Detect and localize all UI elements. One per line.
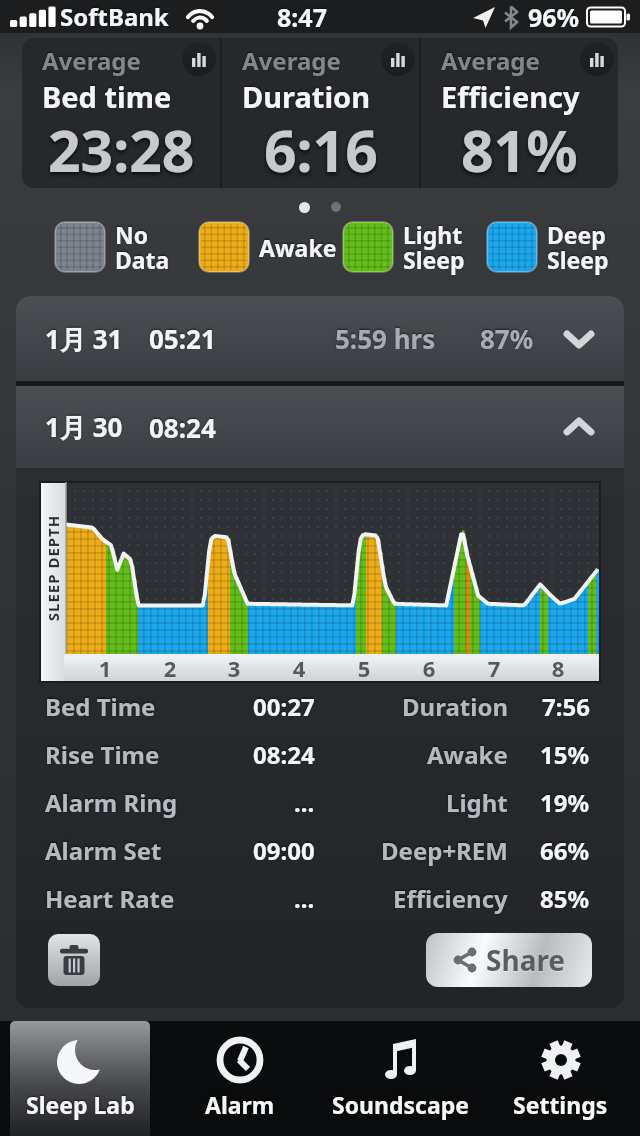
staticText: 23:28: [48, 111, 195, 188]
staticText: 2: [130, 653, 210, 683]
staticText: Light: [446, 786, 508, 819]
button[interactable]: [580, 42, 614, 76]
staticText: Settings: [513, 1089, 608, 1120]
staticText: Alarm Ring: [45, 786, 178, 819]
staticText: Efficiency: [393, 882, 508, 915]
staticText: Efficiency: [441, 77, 580, 116]
staticText: 5:59 hrs: [335, 321, 436, 356]
staticText: Bed Time: [45, 690, 156, 723]
staticText: 87%: [480, 321, 534, 356]
button[interactable]: Soundscape: [320, 1021, 480, 1136]
staticText: No Data: [115, 219, 170, 276]
button[interactable]: Average: [421, 38, 618, 188]
staticText: SLEEP DEPTH: [43, 493, 63, 643]
staticText: SoftBank: [60, 0, 169, 33]
staticText: Average: [42, 44, 141, 77]
staticText: ...: [294, 786, 315, 819]
staticText: 7: [454, 653, 534, 683]
staticText: 85%: [540, 882, 590, 915]
staticText: 05:21: [149, 321, 216, 356]
button[interactable]: Average: [22, 38, 220, 188]
staticText: 00:27: [253, 690, 315, 723]
staticText: 19%: [540, 786, 590, 819]
staticText: Light Sleep: [403, 219, 465, 276]
staticText: Duration: [242, 77, 371, 116]
button[interactable]: Alarm: [160, 1021, 320, 1136]
staticText: 6: [389, 653, 469, 683]
button[interactable]: [182, 42, 216, 76]
staticText: 1月 31: [45, 321, 123, 357]
staticText: Alarm: [205, 1089, 275, 1120]
button[interactable]: Settings: [480, 1021, 640, 1136]
staticText: 96%: [528, 0, 580, 33]
staticText: Awake: [427, 738, 508, 771]
button[interactable]: Average: [222, 38, 419, 188]
staticText: 8:47: [277, 0, 327, 33]
staticText: Deep Sleep: [547, 219, 609, 276]
staticText: Soundscape: [332, 1089, 469, 1120]
staticText: 4: [259, 653, 339, 683]
staticText: Average: [441, 44, 540, 77]
staticText: 15%: [540, 738, 590, 771]
staticText: Heart Rate: [45, 882, 175, 915]
staticText: Duration: [402, 690, 508, 723]
button[interactable]: [381, 42, 415, 76]
staticText: Alarm Set: [45, 834, 162, 867]
staticText: Deep+REM: [381, 834, 508, 867]
staticText: Bed time: [42, 77, 172, 116]
staticText: 08:24: [149, 410, 216, 445]
staticText: Awake: [259, 232, 337, 263]
button[interactable]: Sleep Lab: [0, 1021, 160, 1136]
staticText: 1: [65, 653, 145, 683]
staticText: Share: [486, 941, 566, 979]
staticText: 09:00: [253, 834, 315, 867]
staticText: 81%: [461, 111, 578, 188]
staticText: 08:24: [253, 738, 315, 771]
staticText: 3: [194, 653, 274, 683]
button[interactable]: 1月 31: [16, 296, 624, 381]
staticText: 5: [324, 653, 404, 683]
staticText: 66%: [540, 834, 590, 867]
staticText: 7:56: [542, 690, 590, 723]
staticText: 6:16: [264, 111, 378, 188]
staticText: Average: [242, 44, 341, 77]
button[interactable]: 1月 30: [16, 386, 624, 468]
staticText: 8: [518, 653, 598, 683]
button[interactable]: Share: [426, 933, 592, 987]
button[interactable]: [48, 934, 100, 986]
staticText: Sleep Lab: [26, 1089, 135, 1120]
staticText: Rise Time: [45, 738, 160, 771]
staticText: 1月 30: [45, 409, 123, 445]
staticText: ...: [294, 882, 315, 915]
